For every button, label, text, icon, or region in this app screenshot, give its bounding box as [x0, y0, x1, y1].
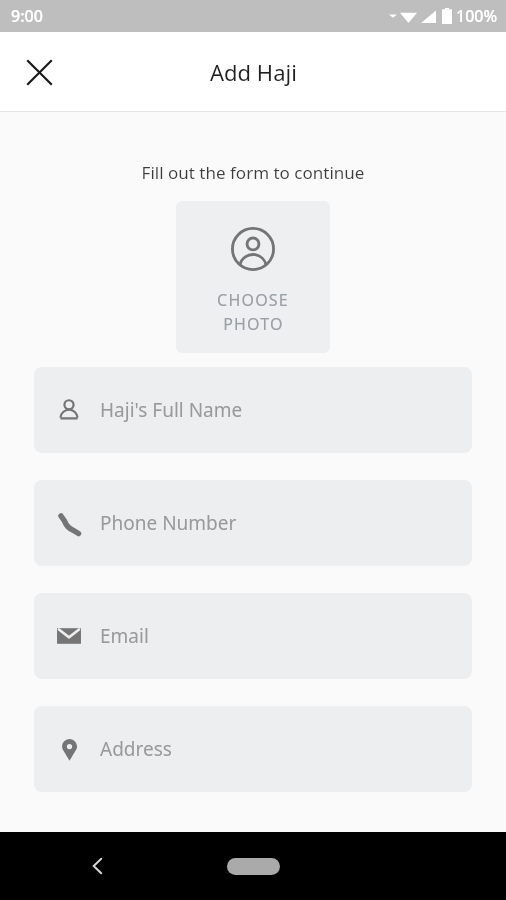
- staticText: Add Haji: [210, 57, 297, 87]
- button[interactable]: Address: [34, 706, 472, 792]
- staticText: PHOTO: [223, 313, 284, 335]
- button[interactable]: CHOOSE: [176, 201, 330, 353]
- button[interactable]: Back: [72, 840, 124, 892]
- button[interactable]: Email: [34, 593, 472, 679]
- staticText: Address: [100, 736, 172, 762]
- staticText: CHOOSE: [217, 289, 289, 311]
- staticText: Fill out the form to continue: [0, 161, 506, 184]
- staticText: Email: [100, 623, 149, 649]
- button[interactable]: Haji's Full Name: [34, 367, 472, 453]
- staticText: 9:00: [11, 5, 43, 27]
- button[interactable]: Home: [219, 849, 287, 883]
- button[interactable]: Close: [12, 45, 66, 99]
- staticText: Phone Number: [100, 510, 237, 536]
- staticText: 100%: [456, 5, 498, 27]
- button[interactable]: Phone Number: [34, 480, 472, 566]
- staticText: Haji's Full Name: [100, 397, 243, 423]
